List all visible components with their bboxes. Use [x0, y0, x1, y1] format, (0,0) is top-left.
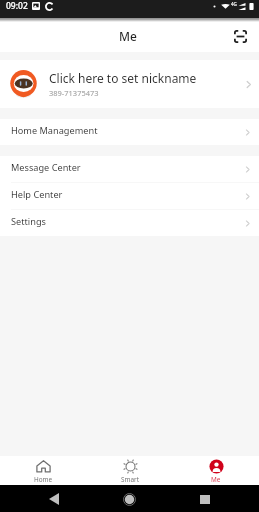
staticText: Me	[119, 28, 137, 44]
button[interactable]: Recent apps	[195, 489, 215, 509]
button[interactable]: Settings	[0, 210, 259, 236]
staticText: Me	[211, 475, 221, 483]
staticText: Settings	[11, 215, 242, 228]
staticText: Message Center	[11, 161, 242, 174]
button[interactable]: Help Center	[0, 183, 259, 209]
staticText: Home Management	[11, 124, 242, 137]
staticText: 4G	[231, 1, 237, 7]
button[interactable]: Scan QR code	[227, 23, 253, 49]
staticText: Help Center	[11, 188, 242, 201]
button[interactable]: Back	[44, 489, 64, 509]
button[interactable]: Click here to set nickname	[0, 60, 259, 108]
staticText: Smart	[121, 475, 140, 483]
staticText: 389-71375473	[49, 88, 99, 98]
staticText: Home	[34, 475, 53, 483]
button[interactable]: Home Management	[0, 119, 259, 145]
button[interactable]: Home	[119, 489, 139, 509]
staticText: 09:02	[6, 0, 28, 12]
button[interactable]: Me	[173, 456, 259, 485]
button[interactable]: Home	[0, 456, 87, 485]
button[interactable]: Message Center	[0, 156, 259, 182]
button[interactable]: Smart	[87, 456, 173, 485]
staticText: Click here to set nickname	[49, 70, 197, 86]
